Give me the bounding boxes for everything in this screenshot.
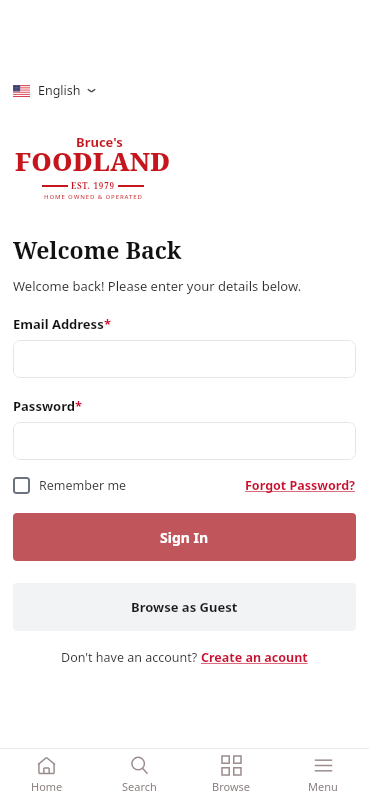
- staticText: Bruce's: [76, 133, 123, 151]
- button[interactable]: Remember me: [13, 477, 127, 494]
- staticText: *: [104, 315, 112, 333]
- button[interactable]: Forgot Password?: [245, 477, 356, 494]
- button[interactable]: Search: [93, 752, 185, 798]
- staticText: English: [38, 82, 81, 99]
- staticText: Menu: [308, 779, 338, 794]
- button[interactable]: Browse as Guest: [13, 583, 356, 631]
- staticText: Remember me: [39, 477, 127, 494]
- staticText: Welcome Back: [13, 234, 182, 265]
- other: Browse: [222, 756, 241, 775]
- staticText: Password: [13, 397, 75, 415]
- button[interactable]: Menu: [277, 752, 369, 798]
- button[interactable]: Browse: [185, 752, 277, 798]
- staticText: EST. 1979: [68, 180, 118, 191]
- button[interactable]: Sign In: [13, 513, 356, 561]
- staticText: Welcome back! Please enter your details …: [13, 277, 302, 295]
- staticText: Browse as Guest: [131, 598, 238, 616]
- staticText: *: [75, 397, 83, 415]
- button[interactable]: English: [13, 80, 96, 101]
- button[interactable]: [13, 422, 356, 460]
- staticText: Search: [122, 779, 157, 794]
- staticText: Email Address: [13, 315, 104, 333]
- button[interactable]: [13, 340, 356, 378]
- button[interactable]: Create an acount: [201, 649, 308, 666]
- staticText: Don't have an account?: [61, 649, 201, 666]
- staticText: Sign In: [160, 528, 209, 547]
- button[interactable]: Home: [0, 752, 93, 798]
- other: Search: [130, 756, 149, 775]
- staticText: Home: [31, 779, 63, 794]
- other: Menu: [314, 756, 333, 775]
- staticText: Create an acount: [201, 649, 308, 666]
- other: Home: [37, 756, 56, 775]
- staticText: Browse: [212, 779, 251, 794]
- staticText: HOME OWNED & OPERATED: [44, 193, 143, 201]
- staticText: FOODLAND: [15, 144, 171, 178]
- staticText: Forgot Password?: [245, 477, 356, 494]
